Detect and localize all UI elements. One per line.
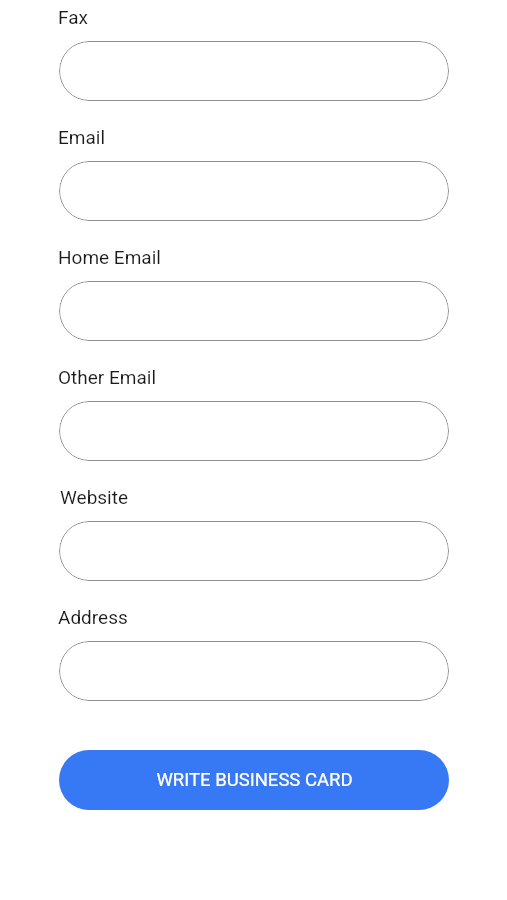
staticText: Other Email: [58, 366, 157, 388]
button[interactable]: Address input field: [59, 641, 449, 701]
button[interactable]: Fax input field: [59, 41, 449, 101]
button[interactable]: Email input field: [59, 161, 449, 221]
button[interactable]: Home Email input field: [59, 281, 449, 341]
staticText: Fax: [58, 6, 88, 28]
button[interactable]: Website input field: [59, 521, 449, 581]
staticText: Address: [58, 606, 128, 628]
button[interactable]: Other Email input field: [59, 401, 449, 461]
staticText: Website: [60, 486, 129, 508]
staticText: Email: [58, 126, 106, 148]
button[interactable]: WRITE BUSINESS CARD: [59, 750, 449, 810]
staticText: Home Email: [58, 246, 161, 268]
staticText: WRITE BUSINESS CARD: [156, 769, 353, 791]
